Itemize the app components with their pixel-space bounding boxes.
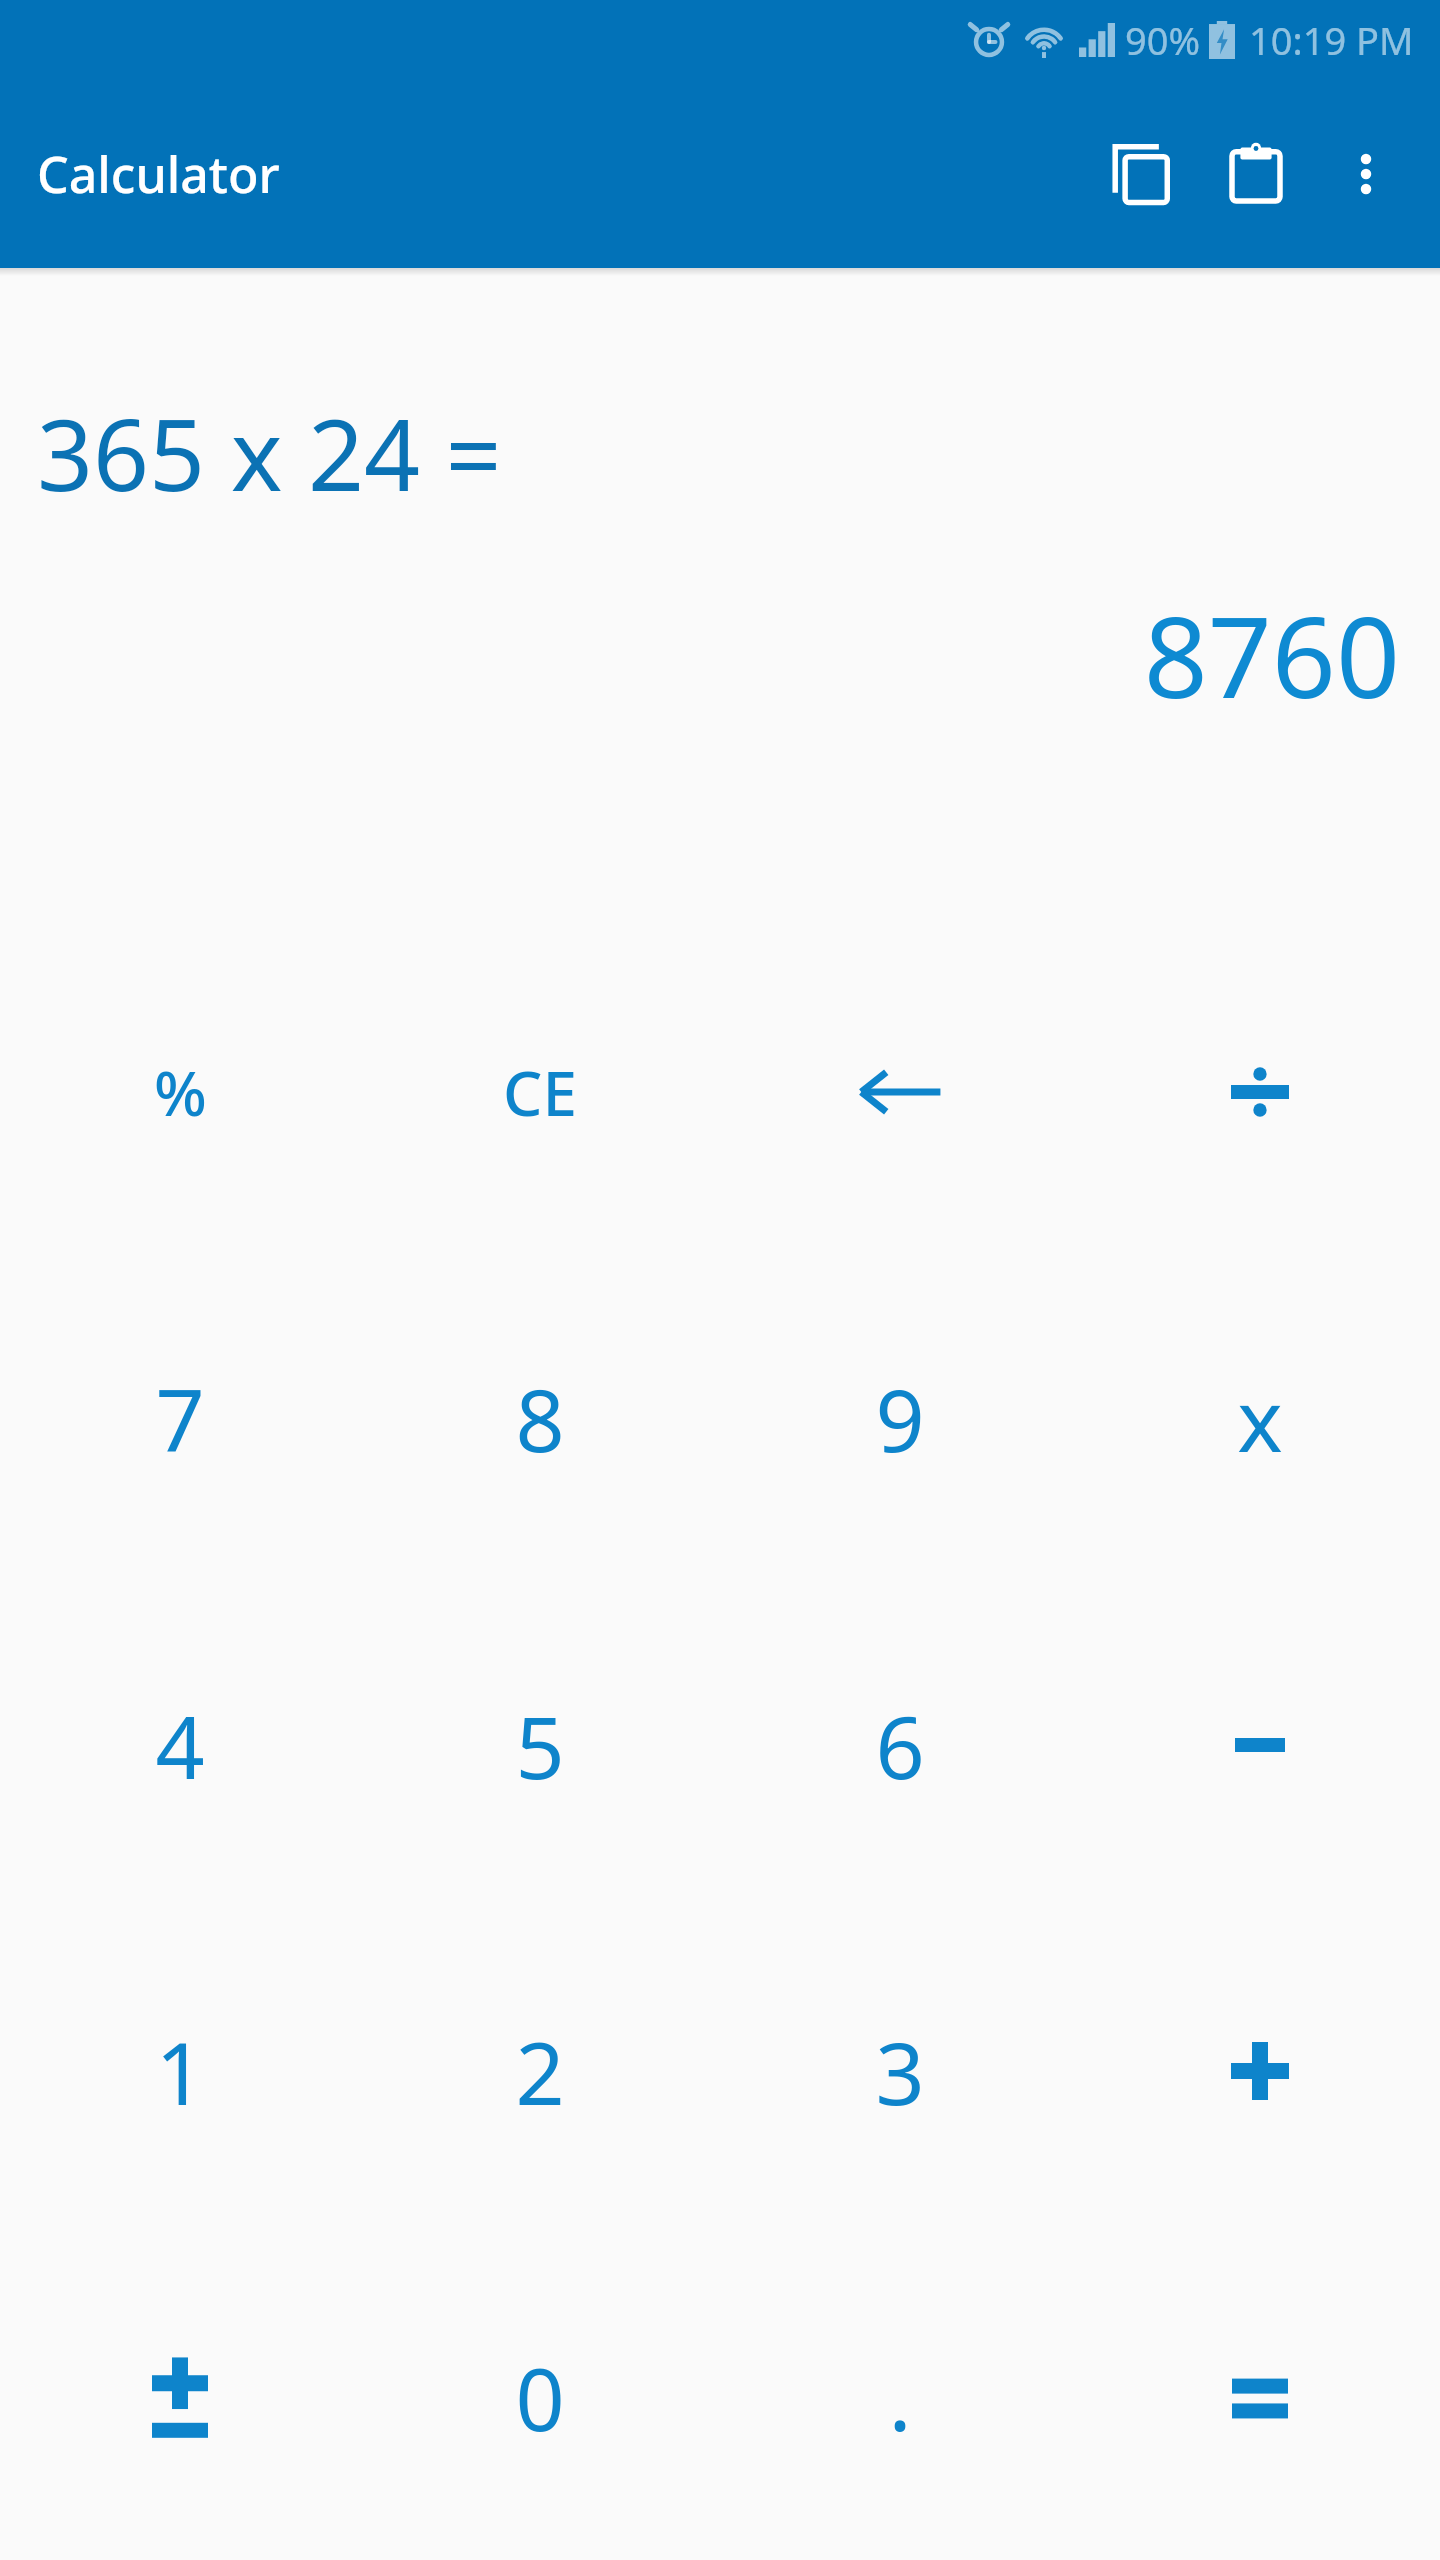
staticText: 10:19 PM: [1249, 14, 1414, 66]
staticText: 0: [515, 2339, 565, 2456]
button[interactable]: 0: [360, 2234, 720, 2560]
staticText: 90%: [1125, 14, 1201, 66]
button[interactable]: 2: [360, 1908, 720, 2234]
staticText: 365 x 24 =: [37, 386, 502, 519]
button[interactable]: 9: [720, 1255, 1080, 1582]
button[interactable]: Divide: [1080, 928, 1440, 1255]
button[interactable]: Paste: [1198, 116, 1314, 232]
staticText: 8: [515, 1360, 565, 1477]
staticText: 3: [875, 2013, 925, 2130]
button[interactable]: CE: [360, 928, 720, 1255]
staticText: 1: [155, 2013, 205, 2130]
button[interactable]: 8: [360, 1255, 720, 1582]
staticText: Calculator: [37, 140, 280, 208]
staticText: 2: [515, 2013, 565, 2130]
button[interactable]: Minus: [1080, 1582, 1440, 1908]
staticText: 8760: [1143, 578, 1400, 731]
button[interactable]: Equals: [1080, 2234, 1440, 2560]
button[interactable]: 4: [0, 1582, 360, 1908]
staticText: CE: [503, 1050, 577, 1134]
staticText: 7: [155, 1360, 205, 1477]
button[interactable]: 1: [0, 1908, 360, 2234]
staticText: 5: [515, 1687, 565, 1804]
button[interactable]: 3: [720, 1908, 1080, 2234]
button[interactable]: Plus: [1080, 1908, 1440, 2234]
staticText: .: [888, 2339, 912, 2456]
button[interactable]: %: [0, 928, 360, 1255]
button[interactable]: More options: [1314, 122, 1418, 226]
staticText: 4: [155, 1687, 205, 1804]
staticText: x: [1237, 1360, 1283, 1477]
button[interactable]: 7: [0, 1255, 360, 1582]
button[interactable]: Backspace: [720, 928, 1080, 1255]
button[interactable]: .: [720, 2234, 1080, 2560]
button[interactable]: 6: [720, 1582, 1080, 1908]
staticText: 6: [875, 1687, 925, 1804]
button[interactable]: 5: [360, 1582, 720, 1908]
staticText: %: [154, 1050, 207, 1134]
button[interactable]: Plus minus: [0, 2234, 360, 2560]
button[interactable]: x: [1080, 1255, 1440, 1582]
button[interactable]: Copy: [1082, 116, 1198, 232]
staticText: 9: [875, 1360, 925, 1477]
